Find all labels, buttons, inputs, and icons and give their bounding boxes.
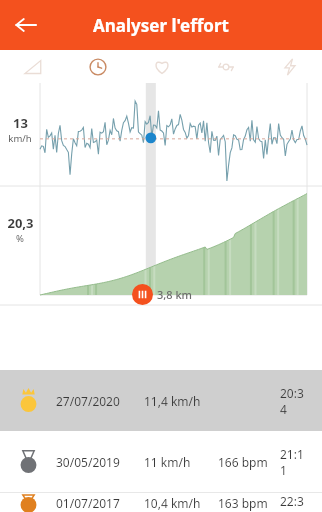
staticText: 166 bpm xyxy=(218,454,268,470)
staticText: 163 bpm xyxy=(218,495,268,511)
staticText: 01/07/2017 xyxy=(56,495,144,511)
button[interactable]: Power xyxy=(258,50,322,83)
staticText: Analyser l'effort xyxy=(93,14,229,37)
staticText: 22:35 xyxy=(280,493,309,512)
button[interactable]: Heart rate xyxy=(130,50,194,83)
staticText: 21:11 xyxy=(280,446,309,478)
staticText: 20:34 xyxy=(280,385,309,417)
staticText: 30/05/2019 xyxy=(56,454,144,470)
staticText: 11 km/h xyxy=(144,454,218,470)
button[interactable]: Cadence xyxy=(194,50,258,83)
staticText: % xyxy=(16,232,24,245)
staticText: 10,4 km/h xyxy=(144,495,218,511)
staticText: 20,3 xyxy=(7,214,34,232)
button[interactable]: 30/05/2019 xyxy=(0,431,322,493)
button[interactable]: 27/07/2020 xyxy=(0,370,322,431)
other: Distance marker xyxy=(132,284,153,305)
button[interactable]: Back xyxy=(6,5,46,45)
button[interactable]: Slope xyxy=(0,50,65,83)
button[interactable]: 01/07/2017 xyxy=(0,493,322,512)
staticText: km/h xyxy=(8,132,32,145)
staticText: 3,8 km xyxy=(157,287,193,302)
staticText: 27/07/2020 xyxy=(56,393,144,409)
staticText: 13 xyxy=(13,114,28,132)
button[interactable]: Time xyxy=(65,50,130,83)
button[interactable]: Distance marker xyxy=(132,284,193,305)
staticText: 11,4 km/h xyxy=(144,393,218,409)
